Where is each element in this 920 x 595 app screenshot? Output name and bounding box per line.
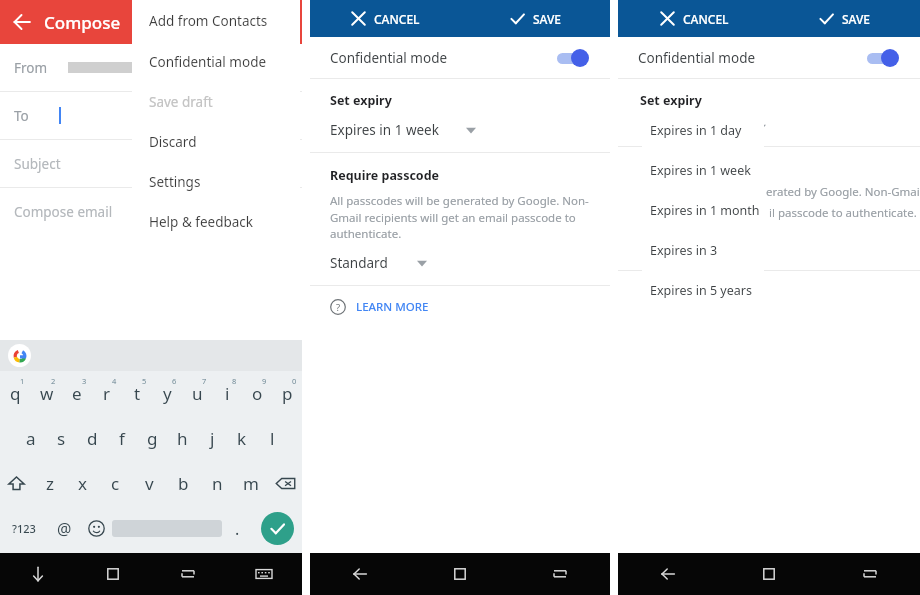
staticText: Add from Contacts [149, 12, 268, 30]
button[interactable]: o [242, 371, 272, 416]
button[interactable]: Back [618, 553, 718, 595]
button[interactable]: h [167, 416, 197, 461]
staticText: Expires in 3 months [650, 242, 764, 259]
button[interactable]: r [92, 371, 122, 416]
button[interactable]: Help & feedback [132, 202, 300, 242]
staticText: 8 [232, 376, 237, 386]
button[interactable]: s [46, 416, 77, 461]
button[interactable]: l [257, 416, 287, 461]
button[interactable]: ? [330, 286, 429, 328]
button[interactable]: k [227, 416, 257, 461]
staticText: Standard [330, 254, 388, 272]
button[interactable]: y [152, 371, 182, 416]
staticText: Subject [14, 155, 61, 173]
staticText: 7 [202, 376, 207, 386]
staticText: s [57, 427, 66, 450]
button[interactable]: Google [8, 344, 31, 367]
button[interactable]: Confidential mode [310, 37, 610, 78]
staticText: a [26, 427, 36, 450]
button[interactable]: Compose email [0, 188, 302, 235]
button[interactable]: SAVE [460, 0, 610, 37]
staticText: Set expiry [640, 92, 702, 109]
button[interactable]: Home [75, 553, 150, 595]
button[interactable]: Expires in 1 week [642, 150, 764, 190]
button[interactable]: e [62, 371, 92, 416]
button[interactable]: From [0, 44, 302, 91]
button[interactable]: Hide keyboard [0, 553, 75, 595]
button[interactable]: Confidential mode [132, 42, 300, 82]
button[interactable]: Subject [0, 140, 302, 187]
button[interactable]: CANCEL [310, 0, 460, 37]
staticText: Expires in 1 week [330, 121, 439, 139]
button[interactable]: v [132, 461, 166, 506]
staticText: Confidential mode [330, 49, 448, 67]
staticText: 5 [142, 376, 147, 386]
button[interactable]: Back [0, 0, 44, 44]
button[interactable]: Expires in 1 week [330, 121, 477, 139]
button[interactable]: n [200, 461, 234, 506]
button[interactable]: a [15, 416, 46, 461]
staticText: u [192, 382, 203, 405]
button[interactable]: Settings [132, 162, 300, 202]
staticText: CANCEL [683, 11, 729, 27]
staticText: b [178, 472, 189, 495]
button[interactable]: Save draft [132, 82, 300, 122]
staticText: w [40, 382, 54, 405]
button[interactable]: Expires in 1 day [642, 110, 764, 150]
button[interactable]: SAVE [769, 0, 920, 37]
button[interactable]: Standard [330, 254, 428, 272]
button[interactable]: f [107, 416, 137, 461]
button[interactable]: t [122, 371, 152, 416]
button[interactable]: Home [410, 553, 510, 595]
button[interactable]: Switch keyboard [226, 553, 302, 595]
button[interactable]: Expires in 5 years [642, 270, 764, 310]
button[interactable]: q [0, 371, 31, 416]
button[interactable]: x [66, 461, 99, 506]
button[interactable]: c [99, 461, 132, 506]
button[interactable]: z [33, 461, 66, 506]
button[interactable]: To [0, 92, 302, 139]
staticText: Expires in 1 week [650, 162, 751, 179]
button[interactable]: Recents [150, 553, 226, 595]
button[interactable]: Emoji [80, 506, 112, 551]
button[interactable]: Recents [510, 553, 610, 595]
button[interactable]: w [31, 371, 62, 416]
button[interactable]: @ [48, 506, 80, 551]
button[interactable]: Confidential mode [618, 37, 920, 78]
staticText: Require passcode [330, 167, 440, 184]
button[interactable]: Expires in 1 month [642, 190, 764, 230]
button[interactable]: Discard [132, 122, 300, 162]
staticText: x [78, 472, 87, 495]
staticText: Expires in 1 day [650, 122, 742, 139]
button[interactable]: b [166, 461, 200, 506]
staticText: Expires in 1 month [650, 202, 760, 219]
button[interactable]: . [222, 506, 252, 551]
staticText: o [252, 382, 263, 405]
button[interactable]: Enter [252, 506, 302, 551]
button[interactable]: Back [310, 553, 410, 595]
button[interactable]: i [212, 371, 242, 416]
button[interactable]: Backspace [268, 461, 302, 506]
staticText: @ [57, 518, 72, 540]
button[interactable]: j [197, 416, 227, 461]
staticText: f [119, 427, 125, 450]
staticText: l [270, 427, 275, 450]
button[interactable]: m [234, 461, 268, 506]
button[interactable]: Home [718, 553, 819, 595]
button[interactable]: g [137, 416, 167, 461]
staticText: m [243, 472, 259, 495]
button[interactable]: ?123 [0, 506, 48, 551]
button[interactable]: Expires in 3 months [642, 230, 764, 270]
button[interactable]: u [182, 371, 212, 416]
staticText: k [237, 427, 247, 450]
staticText: q [10, 382, 21, 405]
staticText: i [225, 382, 230, 405]
button[interactable]: CANCEL [618, 0, 769, 37]
button[interactable]: Shift [0, 461, 33, 506]
button[interactable]: p [272, 371, 302, 416]
button[interactable]: d [77, 416, 107, 461]
button[interactable]: Recents [819, 553, 920, 595]
staticText: Help & feedback [149, 213, 254, 231]
button[interactable]: Add from Contacts [132, 0, 300, 42]
